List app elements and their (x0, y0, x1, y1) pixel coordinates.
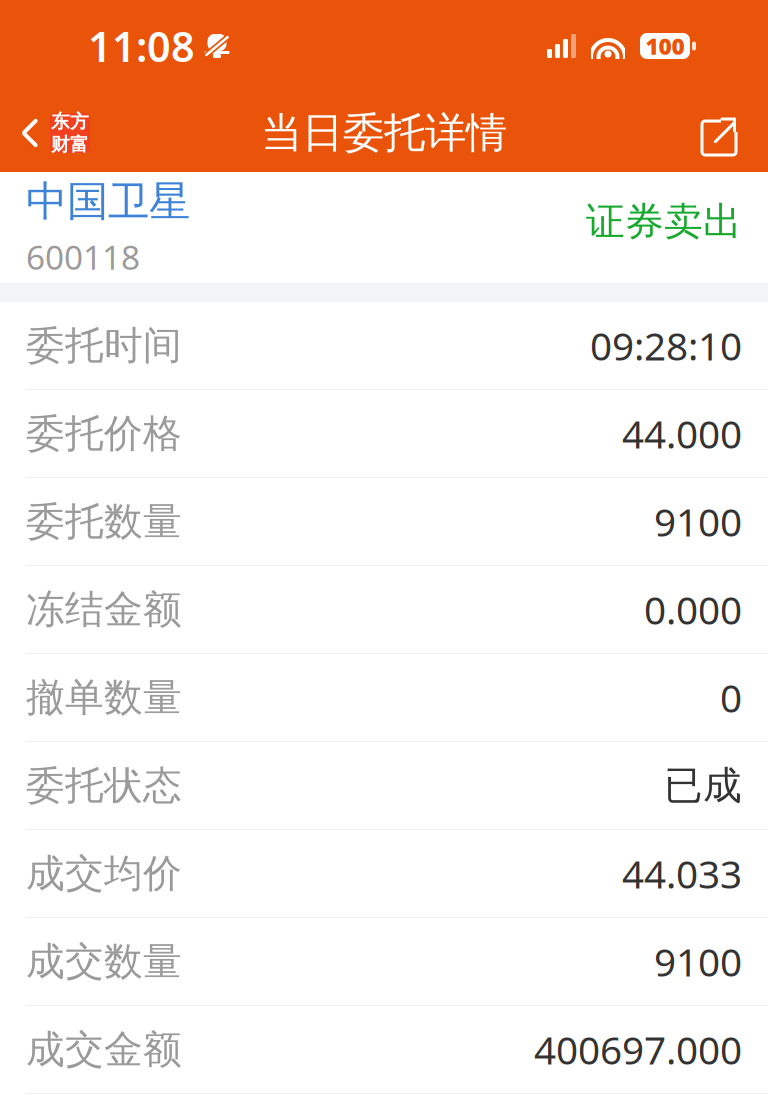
staticText: 证券卖出 (586, 198, 742, 245)
staticText: 委托数量 (26, 498, 182, 545)
staticText: 财 (51, 133, 70, 156)
staticText: 44.000 (622, 408, 742, 459)
staticText: 9100 (654, 496, 742, 547)
staticText: 0 (720, 672, 742, 723)
staticText: 成交数量 (26, 938, 182, 985)
staticText: 方 (70, 110, 89, 133)
staticText: 600118 (26, 235, 140, 279)
staticText: 100 (645, 31, 684, 61)
staticText: 中国卫星 (26, 176, 190, 227)
staticText: 9100 (654, 936, 742, 987)
staticText: 成交均价 (26, 850, 182, 897)
staticText: 东 (51, 110, 70, 133)
button[interactable]: 分享 (700, 94, 768, 172)
button[interactable]: 返回 东方财富 (0, 94, 102, 172)
staticText: 400697.000 (534, 1024, 742, 1075)
staticText: 委托价格 (26, 410, 182, 457)
staticText: 已成 (664, 762, 742, 809)
staticText: 冻结金额 (26, 586, 182, 633)
staticText: 委托时间 (26, 322, 182, 369)
staticText: 委托状态 (26, 762, 182, 809)
staticText: 富 (70, 133, 89, 156)
staticText: 09:28:10 (590, 320, 742, 371)
staticText: 当日委托详情 (261, 108, 507, 158)
staticText: 44.033 (622, 848, 742, 899)
staticText: 撤单数量 (26, 674, 182, 721)
staticText: 成交金额 (26, 1026, 182, 1073)
staticText: 0.000 (644, 584, 742, 635)
staticText: 11:08 (88, 19, 195, 73)
